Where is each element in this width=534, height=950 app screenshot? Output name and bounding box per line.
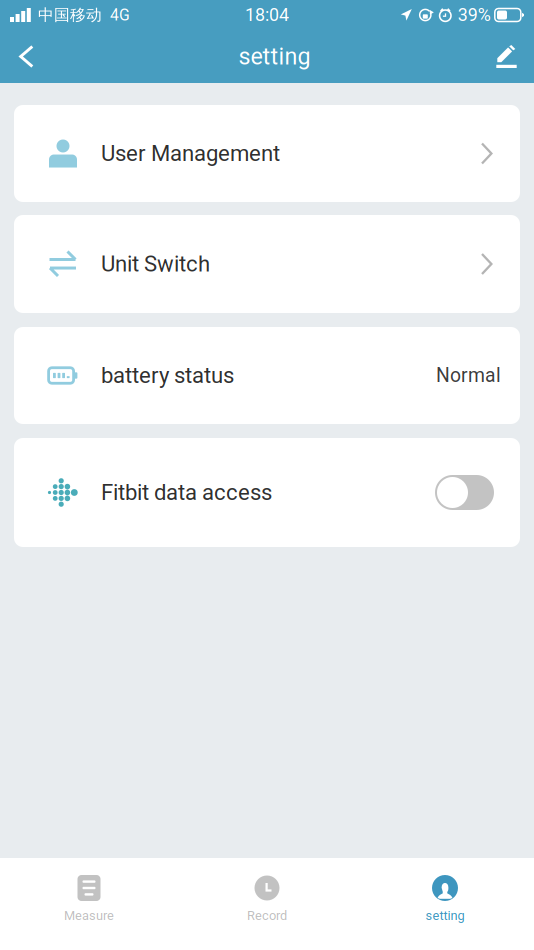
button[interactable]: Fitbit data access <box>14 438 520 547</box>
staticText: Unit Switch <box>101 251 210 277</box>
staticText: 18:04 <box>245 4 289 25</box>
staticText: Fitbit data access <box>101 479 272 505</box>
staticText: Normal <box>436 364 501 387</box>
staticText: battery status <box>101 362 234 388</box>
button[interactable]: User Management <box>14 105 520 202</box>
button[interactable]: setting <box>356 858 534 950</box>
staticText: 中国移动 <box>38 5 102 25</box>
button[interactable]: battery status <box>14 327 520 424</box>
staticText: User Management <box>101 140 280 166</box>
button[interactable]: Measure <box>0 858 178 950</box>
button[interactable]: Unit Switch <box>14 215 520 313</box>
staticText: Measure <box>64 908 114 923</box>
staticText: Record <box>247 908 287 923</box>
button[interactable]: Edit <box>479 30 534 83</box>
staticText: setting <box>238 43 310 70</box>
staticText: setting <box>425 908 464 923</box>
button[interactable]: Record <box>178 858 356 950</box>
button[interactable]: Back <box>0 30 53 83</box>
staticText: 39% <box>458 4 491 25</box>
staticText: 4G <box>110 6 130 24</box>
